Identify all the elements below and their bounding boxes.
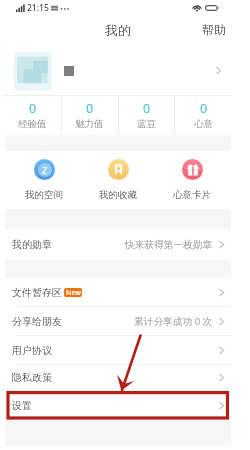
staticText: 魅力值	[75, 118, 104, 130]
staticText: 累计分享成功 0 次	[134, 315, 213, 328]
staticText: 我的	[105, 22, 131, 38]
button[interactable]: 心意卡片	[157, 159, 227, 201]
staticText: 我的勋章	[12, 238, 52, 251]
button[interactable]: 用户协议	[5, 336, 231, 365]
staticText: 我的空间	[25, 189, 63, 201]
staticText: 快来获得第一枚勋章	[125, 239, 213, 251]
button[interactable]	[5, 46, 231, 95]
button[interactable]: 0	[5, 96, 60, 135]
staticText: 0	[29, 100, 37, 117]
staticText: 隐私政策	[12, 371, 52, 384]
button[interactable]: 我的勋章	[5, 229, 231, 260]
button[interactable]: 帮助	[192, 16, 231, 46]
staticText: 0	[200, 100, 208, 117]
button[interactable]: 0	[119, 96, 174, 135]
staticText: 设置	[12, 399, 32, 412]
staticText: 21:15	[27, 2, 49, 14]
staticText: 心意	[194, 118, 213, 130]
staticText: 0	[86, 100, 94, 117]
button[interactable]: 设置	[5, 391, 231, 420]
staticText: 蓝豆	[137, 118, 156, 130]
staticText: 0	[143, 100, 151, 117]
staticText: 用户协议	[12, 344, 52, 357]
button[interactable]: 分享给朋友	[5, 307, 231, 336]
button[interactable]: 隐私政策	[5, 365, 231, 390]
button[interactable]: 0	[176, 96, 231, 135]
staticText: 文件暂存区	[12, 286, 62, 299]
button[interactable]: 我的收藏	[83, 159, 153, 201]
staticText: 帮助	[202, 22, 226, 37]
button[interactable]: Z	[9, 159, 79, 201]
staticText: New	[66, 288, 81, 297]
staticText: 心意卡片	[173, 189, 211, 201]
staticText: 我的收藏	[99, 189, 137, 201]
staticText: 经验值	[18, 118, 47, 130]
staticText: 分享给朋友	[12, 315, 62, 328]
button[interactable]: 0	[62, 96, 117, 135]
button[interactable]: 文件暂存区	[5, 278, 231, 307]
staticText: Z	[42, 164, 48, 177]
